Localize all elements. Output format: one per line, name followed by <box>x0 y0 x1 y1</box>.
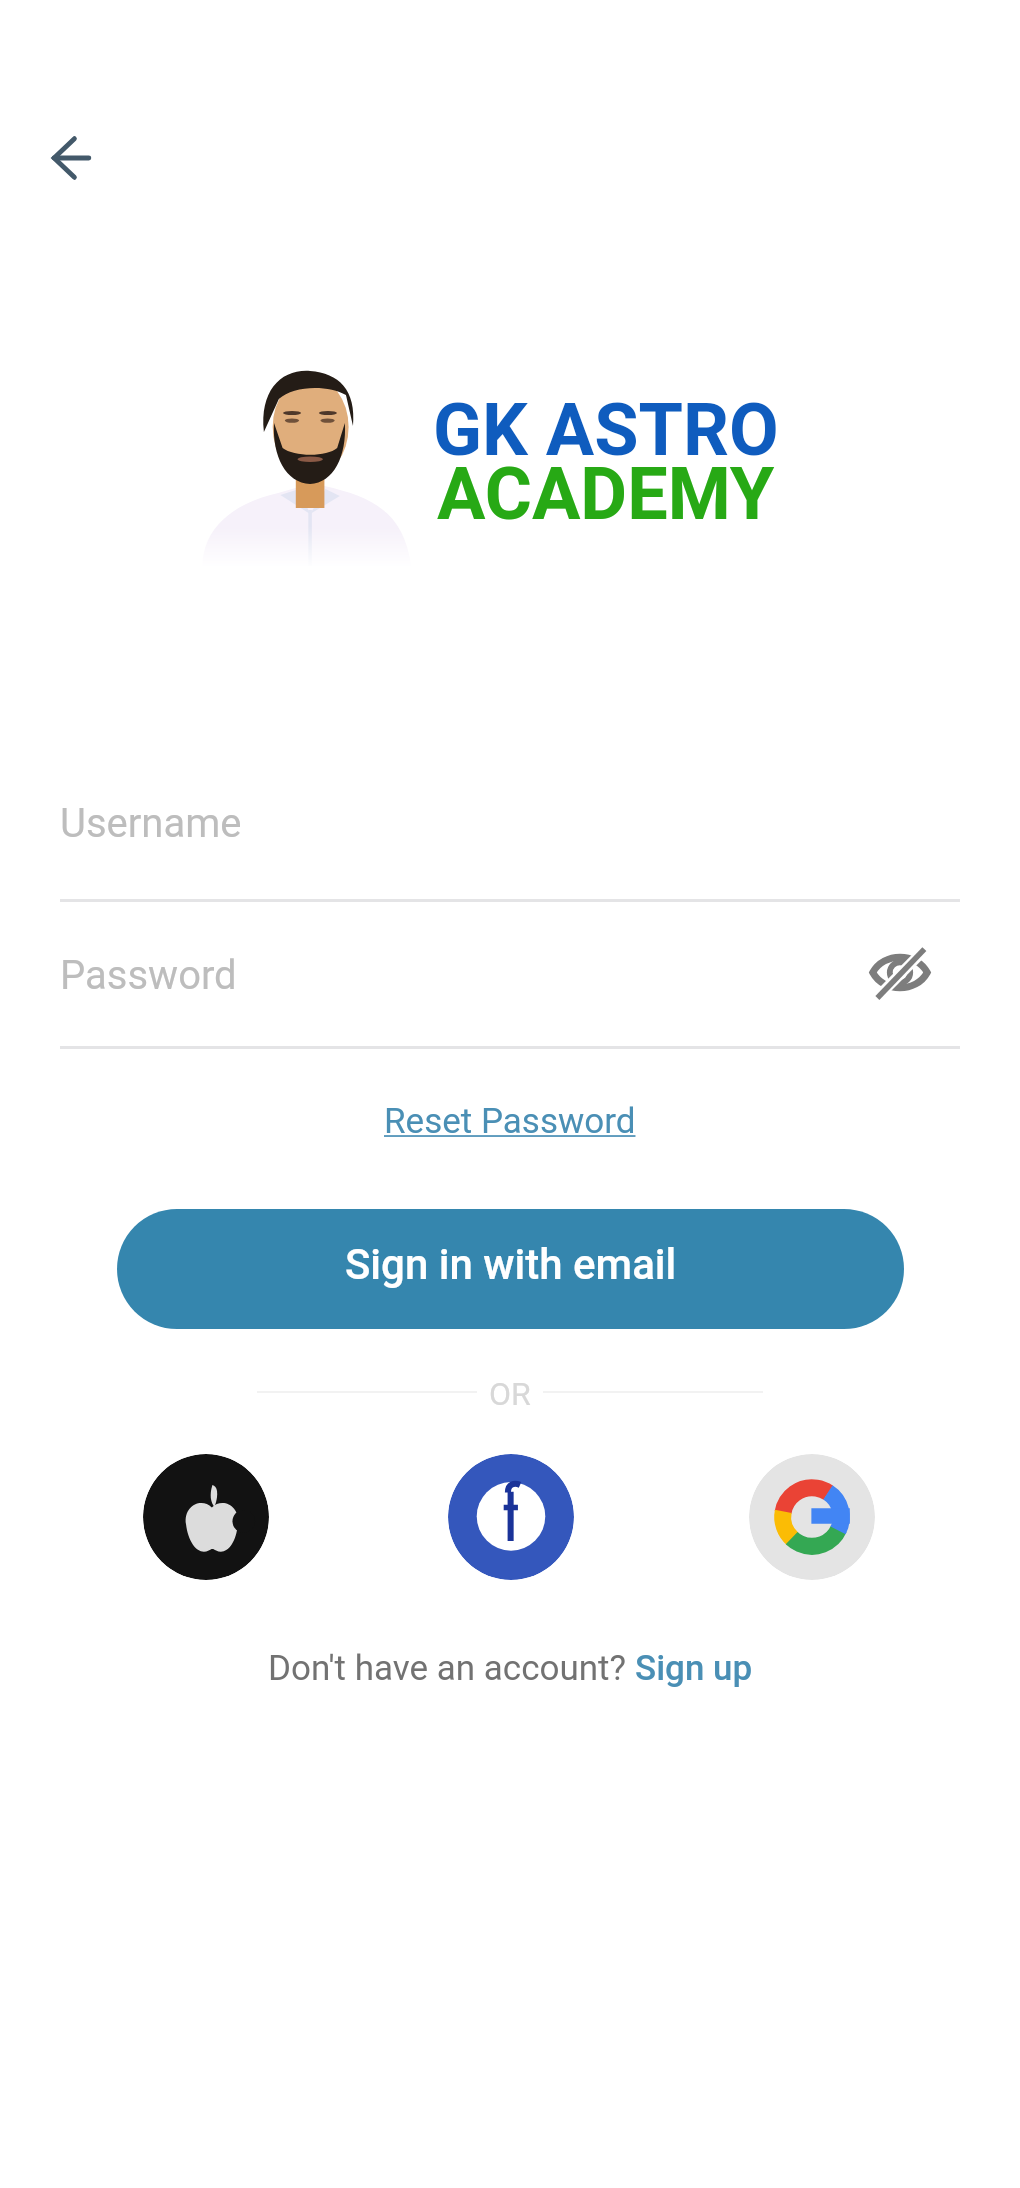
button[interactable]: Sign in with Facebook <box>448 1454 574 1580</box>
button[interactable]: Toggle password visibility <box>861 936 939 1008</box>
button[interactable]: Reset Password <box>360 1081 660 1162</box>
button[interactable]: Password <box>60 952 960 1046</box>
staticText: Username <box>60 800 242 847</box>
staticText: Reset Password <box>384 1101 636 1142</box>
staticText: Sign up <box>635 1648 753 1689</box>
button[interactable]: Username <box>60 800 960 899</box>
button[interactable]: Sign up <box>635 1634 753 1703</box>
staticText: Sign in with email <box>345 1240 677 1289</box>
staticText: Password <box>60 952 237 999</box>
button[interactable]: Sign in with email <box>117 1209 904 1329</box>
button[interactable]: Sign in with Apple <box>143 1454 269 1580</box>
button[interactable]: Back <box>32 122 108 194</box>
staticText: Don't have an account? <box>268 1648 635 1689</box>
staticText: GK ASTRO <box>433 388 779 472</box>
staticText: ACADEMY <box>437 452 775 536</box>
button[interactable]: Sign in with Google <box>749 1454 875 1580</box>
staticText: OR <box>489 1375 531 1409</box>
